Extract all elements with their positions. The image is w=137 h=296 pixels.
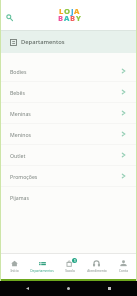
button[interactable]: Meninos — [0, 124, 137, 144]
button[interactable]: 1 — [56, 254, 83, 279]
button[interactable]: Bebês — [0, 82, 137, 102]
button[interactable]: Conta — [110, 254, 137, 279]
button[interactable]: Início — [0, 254, 28, 279]
staticText: Pijamas — [10, 194, 29, 201]
staticText: Conta — [119, 269, 128, 273]
staticText: B — [58, 13, 64, 23]
staticText: Outlet — [10, 152, 26, 159]
button[interactable]: Departamentos — [28, 254, 56, 279]
button[interactable]: Search — [4, 12, 15, 23]
staticText: Meninas — [10, 110, 31, 117]
staticText: Departamentos — [30, 269, 54, 273]
staticText: Início — [10, 269, 19, 273]
staticText: Promoções — [10, 173, 38, 180]
staticText: B — [70, 13, 76, 23]
button[interactable]: Outlet — [0, 145, 137, 165]
staticText: Meninos — [10, 131, 32, 138]
other: Back — [25, 286, 30, 291]
button[interactable]: Promoções — [0, 166, 137, 186]
staticText: A — [74, 6, 80, 16]
other: Recents — [107, 286, 112, 291]
staticText: Bebês — [10, 89, 25, 96]
staticText: J — [71, 6, 74, 16]
staticText: L — [59, 6, 64, 16]
button[interactable]: Bodies — [0, 61, 137, 81]
staticText: O — [64, 6, 71, 16]
button[interactable]: Pijamas — [0, 187, 137, 207]
button[interactable]: Atendimento — [83, 254, 110, 279]
staticText: Departamentos — [21, 38, 65, 46]
other: Home — [66, 286, 71, 291]
staticText: A — [64, 13, 70, 23]
button[interactable]: Meninas — [0, 103, 137, 123]
staticText: 1 — [74, 259, 76, 263]
staticText: Y — [76, 13, 81, 23]
staticText: Bodies — [10, 68, 27, 75]
staticText: Sacola — [65, 269, 75, 273]
staticText: Atendimento — [87, 269, 107, 273]
